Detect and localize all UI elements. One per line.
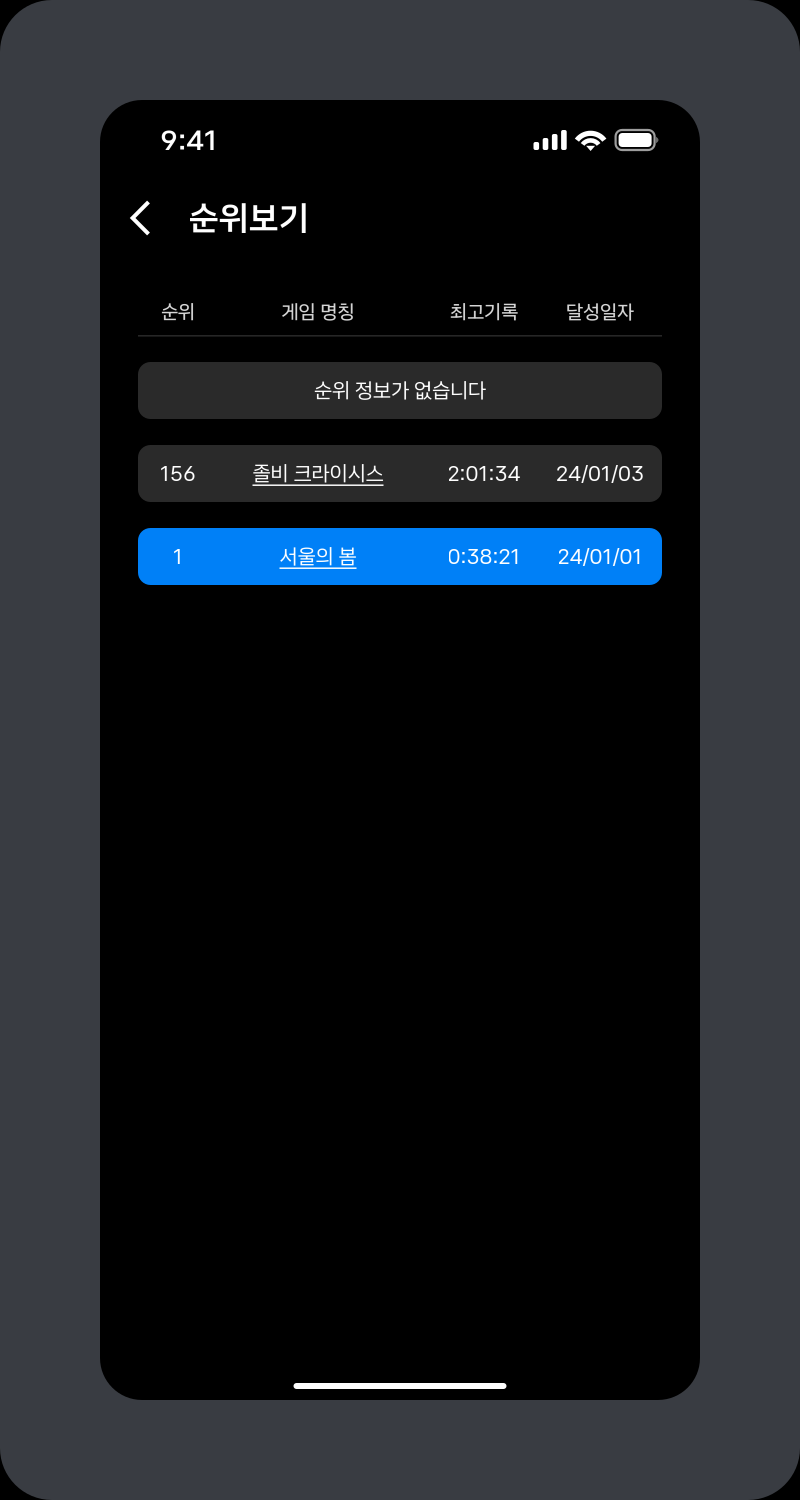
button[interactable]: 순위 정보가 없습니다: [138, 362, 662, 419]
staticText: 24/01/03: [556, 461, 644, 486]
staticText: 서울의 봄: [279, 544, 356, 569]
staticText: 156: [160, 461, 196, 486]
staticText: 순위: [161, 300, 195, 324]
staticText: 게임 명칭: [281, 300, 354, 324]
staticText: 졸비 크라이시스: [252, 461, 383, 486]
staticText: 최고기록: [450, 300, 518, 324]
staticText: 순위 정보가 없습니다: [314, 378, 486, 403]
staticText: 9:41: [160, 122, 218, 157]
staticText: 1: [173, 544, 183, 569]
button[interactable]: Back: [100, 186, 189, 249]
staticText: 0:38:21: [447, 544, 520, 569]
staticText: 달성일자: [566, 300, 634, 324]
staticText: 2:01:34: [447, 461, 520, 486]
staticText: 순위보기: [189, 197, 309, 239]
button[interactable]: 1: [138, 528, 662, 585]
button[interactable]: 156: [138, 445, 662, 502]
staticText: 24/01/01: [557, 544, 642, 569]
